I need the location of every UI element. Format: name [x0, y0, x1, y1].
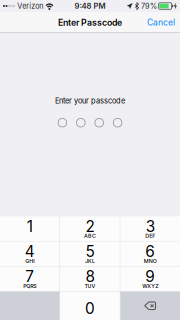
button[interactable]: 5 [60, 241, 120, 266]
staticText: Enter your passcode [55, 96, 125, 105]
staticText: 0 [85, 299, 95, 318]
button[interactable]: 3 [120, 216, 180, 241]
button[interactable]: 1 [0, 216, 60, 241]
staticText: 2 [85, 217, 94, 236]
staticText: 1 [27, 217, 33, 236]
staticText: 4 [25, 242, 35, 261]
staticText: DEF [145, 233, 155, 239]
staticText: 5 [85, 242, 94, 261]
staticText: 9 [145, 267, 155, 286]
staticText: 79% [141, 2, 157, 10]
staticText: PQRS [23, 283, 36, 289]
staticText: GHI [25, 258, 34, 264]
staticText: 3 [146, 217, 155, 236]
button[interactable]: 9 [120, 267, 180, 291]
staticText: MNO [144, 258, 157, 264]
staticText: WXYZ [142, 283, 158, 289]
staticText: 6 [145, 242, 155, 261]
staticText: JKL [85, 258, 95, 264]
button[interactable]: 0 [60, 292, 120, 320]
button[interactable]: 4 [0, 241, 60, 266]
staticText: Cancel [147, 17, 175, 28]
staticText: TUV [84, 283, 95, 289]
button[interactable]: 2 [60, 216, 120, 241]
button[interactable]: 8 [60, 267, 120, 291]
button[interactable]: 7 [0, 267, 60, 291]
staticText: ABC [84, 233, 96, 239]
staticText: 9:48 PM [74, 1, 105, 11]
button[interactable]: Delete [120, 292, 180, 320]
staticText: Verizon [17, 2, 43, 10]
staticText: 8 [85, 267, 94, 286]
button[interactable]: 6 [120, 241, 180, 266]
button[interactable]: Cancel [142, 13, 180, 32]
staticText: 7 [25, 267, 34, 286]
staticText: Enter Passcode [58, 17, 122, 28]
